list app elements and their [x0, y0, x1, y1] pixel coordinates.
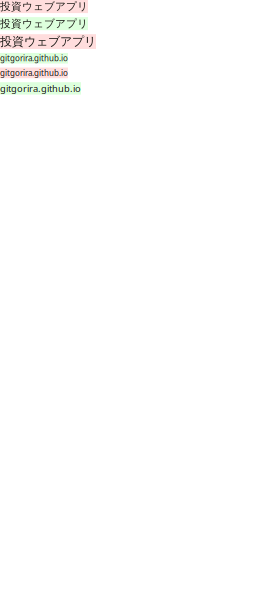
staticText: gitgorira.github.io [0, 53, 68, 63]
staticText: 投資ウェブアプリ [0, 17, 88, 30]
staticText: gitgorira.github.io [0, 82, 81, 95]
staticText: 投資ウェブアプリ [0, 34, 96, 49]
staticText: 投資ウェブアプリ [0, 0, 88, 13]
staticText: gitgorira.github.io [0, 68, 68, 78]
